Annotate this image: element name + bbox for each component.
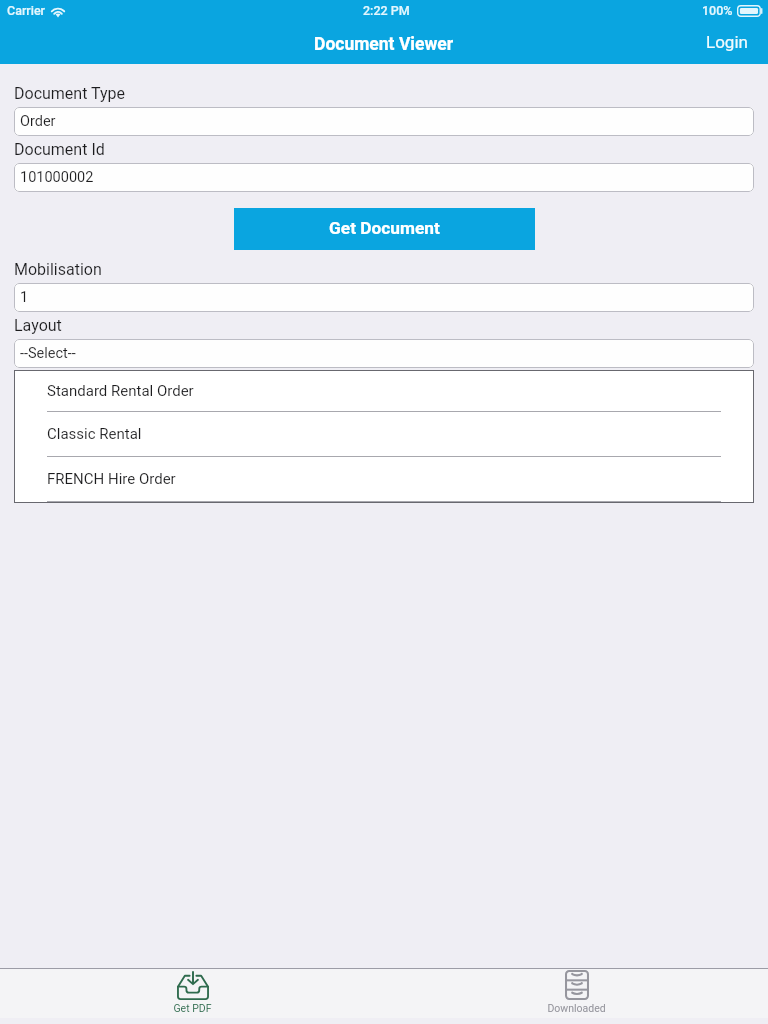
- staticText: Classic Rental: [47, 425, 142, 443]
- staticText: Get PDF: [173, 1002, 212, 1014]
- staticText: Standard Rental Order: [47, 382, 194, 400]
- staticText: Login: [706, 32, 748, 52]
- staticText: --Select--: [20, 345, 76, 362]
- button[interactable]: 101000002: [14, 163, 754, 192]
- staticText: Document Type: [14, 84, 126, 103]
- button[interactable]: Standard Rental Order: [14, 370, 754, 412]
- staticText: FRENCH Hire Order: [47, 470, 176, 488]
- staticText: Get Document: [329, 218, 440, 238]
- button[interactable]: FRENCH Hire Order: [14, 457, 754, 502]
- staticText: 2:22 PM: [363, 3, 410, 18]
- button[interactable]: Get Document: [234, 208, 535, 250]
- staticText: Document Viewer: [314, 34, 454, 55]
- staticText: 101000002: [20, 169, 94, 186]
- button[interactable]: Downloaded: [531, 972, 622, 1016]
- staticText: Document Id: [14, 140, 105, 159]
- button[interactable]: 1: [14, 283, 754, 312]
- button[interactable]: Classic Rental: [14, 412, 754, 457]
- staticText: Carrier: [7, 3, 46, 18]
- staticText: Downloaded: [547, 1002, 606, 1014]
- staticText: Order: [20, 113, 56, 130]
- button[interactable]: Order: [14, 107, 754, 136]
- button[interactable]: Login: [692, 24, 768, 60]
- staticText: 100%: [702, 3, 733, 18]
- button[interactable]: --Select--: [14, 339, 754, 368]
- staticText: Layout: [14, 316, 62, 335]
- button[interactable]: Get PDF: [157, 972, 228, 1016]
- staticText: 1: [20, 289, 29, 306]
- staticText: Mobilisation: [14, 260, 102, 279]
